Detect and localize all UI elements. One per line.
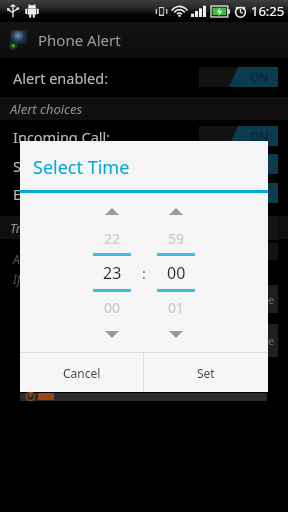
button[interactable]: SMS: [13,156,46,176]
staticText: e [268,292,275,307]
staticText: SMS: [13,156,46,176]
button[interactable]: If silent [13,271,53,287]
staticText: Incoming Call: [13,127,111,147]
button[interactable]: Active time [13,251,71,267]
staticText: Select Time [33,155,130,180]
button[interactable]: Increment [148,208,204,224]
staticText: If silent [13,271,53,287]
button[interactable]: Toggle [199,154,278,174]
staticText: Set [197,365,215,381]
staticText: : [142,264,146,283]
staticText: Phone Alert [38,30,121,50]
button[interactable]: Decrement [148,322,204,338]
staticText: 01 [168,298,185,317]
button[interactable]: E-mail: [13,184,59,204]
button[interactable]: Set [144,353,268,392]
staticText: Active time [13,251,71,267]
button[interactable]: Cancel [20,353,143,392]
button[interactable]: e [198,324,278,357]
staticText: Alert choices [10,100,83,118]
staticText: ON [250,69,269,85]
staticText: E-mail: [13,184,59,204]
staticText: e [268,333,275,348]
button[interactable]: Alert enabled: [13,68,109,88]
staticText: 22 [104,229,121,248]
staticText: ON [250,156,269,172]
other: Power [26,392,35,401]
staticText: 23 [103,262,122,284]
staticText: 59 [168,229,185,248]
staticText: 00 [104,298,121,317]
button[interactable]: e [198,285,278,313]
staticText: 16:25 [251,2,285,20]
staticText: ON [250,185,269,201]
staticText: 00 [167,262,186,284]
staticText: ON [250,128,269,144]
button[interactable]: Increment [84,208,140,224]
button[interactable]: Toggle [199,126,278,146]
staticText: Alert enabled: [13,68,109,88]
button[interactable]: Decrement [84,322,140,338]
button[interactable]: Toggle [199,67,278,87]
staticText: Trigger [10,219,52,237]
button[interactable]: Incoming Call: [13,127,111,147]
staticText: Cancel [63,365,101,381]
button[interactable]: Phone Alert [0,22,288,58]
button[interactable]: Toggle [199,183,278,203]
